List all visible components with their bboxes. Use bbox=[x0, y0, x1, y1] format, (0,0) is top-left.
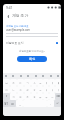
button[interactable]: ㅍ bbox=[31, 93, 37, 100]
button[interactable]: ㅑ bbox=[49, 79, 55, 86]
staticText: ㅠ bbox=[39, 95, 42, 98]
staticText: 9:41 bbox=[6, 6, 13, 10]
button[interactable]: ㅐ bbox=[55, 79, 61, 86]
button[interactable]: ㅎ bbox=[31, 86, 37, 93]
staticText: ㅍ bbox=[33, 95, 36, 98]
staticText: . bbox=[50, 102, 51, 106]
staticText: ㅜ bbox=[45, 95, 48, 98]
staticText: ㄷ bbox=[19, 81, 22, 84]
button[interactable]: ㅡ bbox=[49, 93, 55, 100]
staticText: ㅣ bbox=[57, 88, 60, 91]
button[interactable]: ⇧ bbox=[3, 93, 10, 100]
button[interactable]: ↵ bbox=[54, 100, 61, 107]
staticText: 비밀번호 표시 bbox=[6, 41, 24, 45]
button[interactable]: ㅅ bbox=[31, 79, 37, 86]
button[interactable]: 한 bbox=[9, 100, 16, 107]
staticText: 비밀번호를 잊으셨나요? bbox=[19, 49, 45, 52]
staticText: ㄹ bbox=[26, 88, 29, 91]
staticText: ㅅ bbox=[33, 81, 36, 84]
staticText: ㅋ bbox=[12, 95, 15, 98]
button[interactable]: ㅗ bbox=[37, 86, 43, 93]
button[interactable]: ⌫ bbox=[55, 93, 61, 100]
staticText: ⇧ bbox=[5, 95, 8, 98]
staticText: ㅗ bbox=[39, 88, 42, 91]
staticText: !#1 bbox=[4, 102, 8, 106]
staticText: ㅈ bbox=[12, 81, 15, 84]
staticText: ㅁ bbox=[5, 88, 8, 91]
button[interactable]: ㅕ bbox=[43, 79, 49, 86]
button[interactable]: ㄷ bbox=[17, 79, 24, 86]
staticText: ㅇ bbox=[19, 88, 22, 91]
button[interactable]: ㅁ bbox=[3, 86, 10, 93]
staticText: 한 bbox=[11, 102, 14, 105]
staticText: ㅕ bbox=[45, 81, 48, 84]
staticText: user@example.com bbox=[6, 28, 31, 32]
staticText: ㅊ bbox=[26, 95, 29, 98]
button[interactable]: 확인 bbox=[17, 56, 47, 62]
staticText: _ bbox=[19, 102, 21, 106]
button[interactable]: ㅠ bbox=[37, 93, 43, 100]
staticText: ㄱ bbox=[26, 81, 29, 84]
button[interactable]: ㅌ bbox=[17, 93, 24, 100]
staticText: 계정 추가 bbox=[12, 13, 29, 18]
button[interactable]: ㅂ bbox=[3, 79, 10, 86]
staticText: ㅛ bbox=[39, 81, 42, 84]
staticText: ㅓ bbox=[45, 88, 48, 91]
button[interactable]: ㄴ bbox=[10, 86, 17, 93]
button[interactable]: ㅇ bbox=[17, 86, 24, 93]
button[interactable]: ㅋ bbox=[10, 93, 17, 100]
button[interactable]: ㅓ bbox=[43, 86, 49, 93]
button[interactable]: 비밀번호를 잊으셨나요? bbox=[19, 49, 45, 52]
staticText: ㅌ bbox=[19, 95, 22, 98]
button[interactable]: ㅜ bbox=[43, 93, 49, 100]
staticText: ㅐ bbox=[57, 81, 60, 84]
button[interactable]: !#1 bbox=[3, 100, 9, 107]
button[interactable]: 비밀번호 표시 bbox=[6, 41, 58, 45]
staticText: 이메일 또는 전화번호 bbox=[6, 24, 29, 27]
staticText: ㅎ bbox=[33, 88, 36, 91]
staticText: ↵ bbox=[56, 102, 59, 105]
button[interactable]: ㅏ bbox=[49, 86, 55, 93]
staticText: ㅏ bbox=[51, 88, 54, 91]
button[interactable]: ㄱ bbox=[24, 79, 31, 86]
staticText: ⌫ bbox=[56, 95, 60, 98]
button[interactable]: ㅣ bbox=[55, 86, 61, 93]
staticText: ㅡ bbox=[51, 95, 54, 98]
staticText: ㅂ bbox=[5, 81, 8, 84]
button[interactable]: ㅊ bbox=[24, 93, 31, 100]
button[interactable]: Back bbox=[4, 12, 12, 20]
button[interactable]: ㅈ bbox=[10, 79, 17, 86]
staticText: 확인 bbox=[29, 57, 36, 61]
staticText: ㄴ bbox=[12, 88, 15, 91]
button[interactable]: _ bbox=[16, 100, 23, 107]
button[interactable]: ㅛ bbox=[37, 79, 43, 86]
staticText: ㅑ bbox=[51, 81, 54, 84]
button[interactable]: ㄹ bbox=[24, 86, 31, 93]
